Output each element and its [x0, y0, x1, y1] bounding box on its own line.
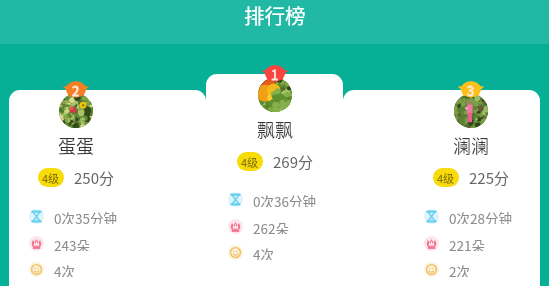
- staticText: 250分: [74, 167, 114, 188]
- button[interactable]: Avatar: [258, 78, 292, 112]
- button[interactable]: Rank 2: [62, 81, 90, 97]
- staticText: 排行榜: [244, 0, 306, 28]
- button[interactable]: [343, 90, 540, 286]
- button[interactable]: [9, 90, 206, 286]
- button[interactable]: Rank 1: [261, 65, 289, 81]
- button[interactable]: Rank 3: [457, 81, 485, 97]
- staticText: 飘飘: [257, 116, 293, 142]
- staticText: 1: [271, 65, 279, 81]
- staticText: 4级: [42, 170, 60, 186]
- staticText: 澜澜: [453, 132, 489, 158]
- staticText: 269分: [273, 151, 313, 172]
- staticText: 3: [467, 81, 475, 97]
- staticText: 4次: [253, 244, 274, 260]
- staticText: 2: [72, 81, 80, 97]
- staticText: 0次36分钟: [253, 191, 316, 207]
- staticText: 4次: [54, 261, 75, 277]
- staticText: 262朵: [253, 218, 289, 234]
- staticText: 蛋蛋: [58, 132, 94, 158]
- staticText: 221朵: [449, 235, 485, 251]
- staticText: 225分: [469, 167, 509, 188]
- button[interactable]: Avatar: [59, 94, 93, 128]
- staticText: 2次: [449, 261, 470, 277]
- staticText: 243朵: [54, 235, 90, 251]
- button[interactable]: Avatar: [454, 94, 488, 128]
- button[interactable]: 排行榜: [0, 0, 549, 28]
- staticText: 4级: [437, 170, 455, 186]
- staticText: 0次28分钟: [449, 208, 512, 224]
- staticText: 0次35分钟: [54, 208, 117, 224]
- button[interactable]: [206, 74, 343, 286]
- staticText: 4级: [241, 154, 259, 170]
